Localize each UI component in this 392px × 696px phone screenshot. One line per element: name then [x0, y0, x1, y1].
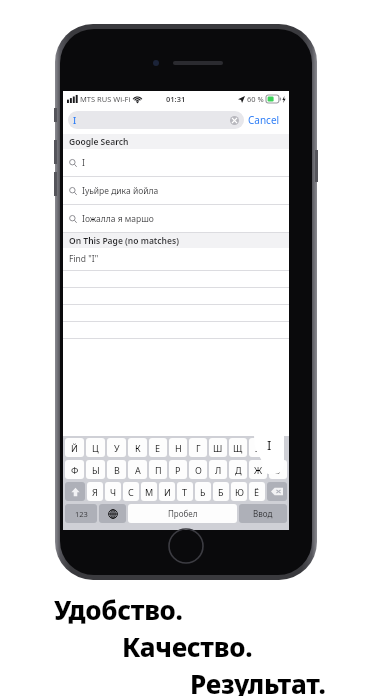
- staticText: Щ: [233, 442, 243, 454]
- button[interactable]: С: [123, 482, 139, 501]
- button[interactable]: Iожалла я маршо: [63, 205, 289, 233]
- button[interactable]: О: [189, 460, 207, 479]
- button[interactable]: Iуьйре дика йойла: [63, 177, 289, 205]
- staticText: К: [135, 442, 141, 454]
- button[interactable]: Щ: [229, 438, 247, 457]
- button[interactable]: Ю: [231, 482, 247, 501]
- staticText: О: [195, 464, 202, 476]
- staticText: Cancel: [248, 113, 280, 127]
- staticText: С: [128, 486, 134, 498]
- staticText: 60 %: [247, 94, 264, 104]
- button[interactable]: Ц: [86, 438, 105, 457]
- staticText: Э: [275, 464, 281, 476]
- button[interactable]: Ж: [249, 460, 267, 479]
- staticText: 123: [75, 509, 88, 519]
- staticText: Г: [196, 442, 201, 454]
- button[interactable]: В: [107, 460, 126, 479]
- staticText: Ю: [235, 486, 244, 498]
- button[interactable]: Switch keyboard language: [99, 504, 126, 523]
- button[interactable]: А: [128, 460, 147, 479]
- button[interactable]: Й: [65, 438, 84, 457]
- button[interactable]: Ввод: [239, 504, 287, 523]
- button[interactable]: Е: [149, 438, 167, 457]
- staticText: Е: [155, 442, 161, 454]
- button[interactable]: Ч: [105, 482, 121, 501]
- button[interactable]: Д: [229, 460, 247, 479]
- button[interactable]: Shift: [65, 482, 85, 501]
- staticText: Н: [175, 442, 182, 454]
- staticText: Iожалла я маршо: [82, 213, 154, 225]
- button[interactable]: Ы: [86, 460, 105, 479]
- staticText: И: [164, 486, 171, 498]
- staticText: П: [155, 464, 162, 476]
- staticText: М: [145, 486, 154, 498]
- button[interactable]: Find "I": [63, 248, 289, 271]
- staticText: I: [73, 114, 77, 126]
- staticText: Т: [182, 486, 188, 498]
- button[interactable]: Ь: [195, 482, 211, 501]
- button[interactable]: Б: [213, 482, 229, 501]
- staticText: Пробел: [168, 508, 198, 519]
- button[interactable]: Cancel: [244, 110, 284, 130]
- staticText: Ж: [254, 464, 263, 476]
- staticText: Д: [235, 464, 242, 476]
- staticText: А: [135, 464, 141, 476]
- button[interactable]: Ф: [65, 460, 84, 479]
- button[interactable]: Ш: [209, 438, 227, 457]
- button[interactable]: Т: [177, 482, 193, 501]
- staticText: On This Page (no matches): [69, 235, 179, 247]
- staticText: Ф: [71, 464, 79, 476]
- button[interactable]: П: [149, 460, 167, 479]
- button[interactable]: З: [249, 438, 267, 457]
- staticText: Ввод: [253, 508, 273, 519]
- button[interactable]: Л: [209, 460, 227, 479]
- staticText: 01:31: [166, 94, 186, 104]
- button[interactable]: I: [68, 111, 244, 129]
- button[interactable]: Пробел: [128, 504, 237, 523]
- staticText: В: [114, 464, 120, 476]
- button[interactable]: Я: [87, 482, 103, 501]
- staticText: I: [267, 436, 272, 454]
- button[interactable]: И: [159, 482, 175, 501]
- staticText: У: [114, 442, 120, 454]
- staticText: З: [255, 442, 261, 454]
- staticText: Я: [92, 486, 98, 498]
- staticText: Б: [218, 486, 224, 498]
- staticText: Find "I": [69, 253, 99, 265]
- staticText: Й: [71, 442, 78, 454]
- staticText: Ь: [200, 486, 206, 498]
- button[interactable]: Р: [169, 460, 187, 479]
- staticText: Ш: [213, 442, 223, 454]
- button[interactable]: 123: [65, 504, 97, 523]
- staticText: Ц: [92, 442, 99, 454]
- staticText: I: [82, 157, 85, 169]
- staticText: Р: [175, 464, 181, 476]
- staticText: Google Search: [69, 136, 129, 148]
- staticText: Iуьйре дика йойла: [82, 185, 159, 197]
- button[interactable]: К: [128, 438, 147, 457]
- button[interactable]: Clear text: [230, 116, 239, 125]
- staticText: Результат.: [190, 666, 326, 696]
- button[interactable]: У: [107, 438, 126, 457]
- staticText: Ё: [254, 486, 260, 498]
- staticText: MTS RUS Wi-Fi: [80, 94, 131, 104]
- staticText: Удобство.: [54, 592, 183, 627]
- button[interactable]: Ё: [249, 482, 265, 501]
- staticText: Ч: [110, 486, 117, 498]
- button[interactable]: I: [63, 149, 289, 177]
- button[interactable]: Г: [189, 438, 207, 457]
- button[interactable]: Э: [269, 460, 287, 479]
- button[interactable]: Н: [169, 438, 187, 457]
- staticText: Качество.: [122, 629, 253, 664]
- staticText: Л: [215, 464, 222, 476]
- button[interactable]: М: [141, 482, 157, 501]
- button[interactable]: Backspace: [267, 482, 287, 501]
- staticText: Ы: [92, 464, 100, 476]
